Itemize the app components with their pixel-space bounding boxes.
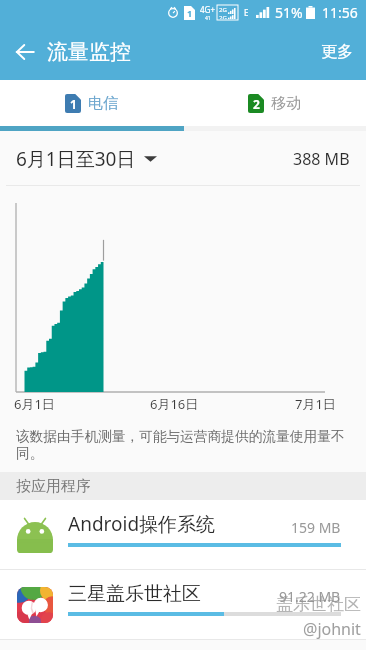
staticText: 电信 [88, 94, 118, 113]
staticText: @johnit [303, 618, 361, 640]
staticText: 6月1日 [14, 395, 55, 413]
staticText: 1 [70, 96, 77, 112]
button[interactable]: 2 [183, 80, 366, 126]
staticText: 7月1日 [295, 395, 336, 413]
staticText: 2G [219, 6, 227, 14]
staticText: 按应用程序 [16, 477, 91, 496]
button[interactable]: 1 [0, 80, 183, 126]
button[interactable]: 三星盖乐世社区 [0, 570, 366, 640]
staticText: 盖乐世社区 [276, 594, 361, 615]
staticText: 1 [187, 7, 193, 19]
staticText: Android操作系统 [68, 511, 216, 537]
button[interactable]: Back [7, 34, 43, 70]
staticText: 41 [205, 15, 211, 22]
staticText: 该数据由手机测量，可能与运营商提供的流量使用量不同。 [16, 428, 352, 462]
staticText: 三星盖乐世社区 [68, 582, 201, 606]
staticText: 159 MB [291, 518, 341, 537]
staticText: 51% [275, 3, 303, 22]
button[interactable]: 更多 [318, 34, 356, 70]
staticText: 2 [253, 96, 260, 112]
staticText: 4G+ [200, 4, 215, 15]
staticText: 11:56 [322, 3, 358, 22]
staticText: 流量监控 [47, 39, 131, 65]
staticText: 2G [219, 14, 227, 19]
staticText: 更多 [321, 42, 353, 62]
button[interactable]: Android操作系统 [0, 500, 366, 570]
staticText: 移动 [271, 94, 301, 113]
staticText: 388 MB [293, 148, 350, 170]
staticText: E [244, 7, 249, 18]
staticText: 6月16日 [150, 395, 199, 413]
staticText: 6月1日至30日 [16, 146, 136, 172]
button[interactable]: 6月1日至30日 [16, 146, 157, 172]
staticText: 91.22 MB [279, 587, 341, 606]
